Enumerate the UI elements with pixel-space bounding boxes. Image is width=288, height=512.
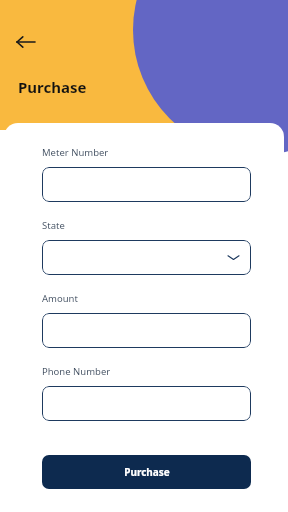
staticText: Meter Number — [42, 146, 109, 159]
button[interactable]: Phone Number input — [42, 386, 251, 421]
staticText: State — [42, 219, 65, 232]
button[interactable]: State dropdown — [42, 240, 251, 275]
button[interactable]: Back — [10, 26, 42, 58]
button[interactable]: Meter Number input — [42, 167, 251, 202]
staticText: Purchase — [18, 77, 87, 97]
staticText: Phone Number — [42, 365, 111, 378]
button[interactable]: Amount input — [42, 313, 251, 348]
staticText: Amount — [42, 292, 78, 305]
staticText: Purchase — [124, 465, 170, 479]
button[interactable]: Purchase — [42, 455, 251, 489]
